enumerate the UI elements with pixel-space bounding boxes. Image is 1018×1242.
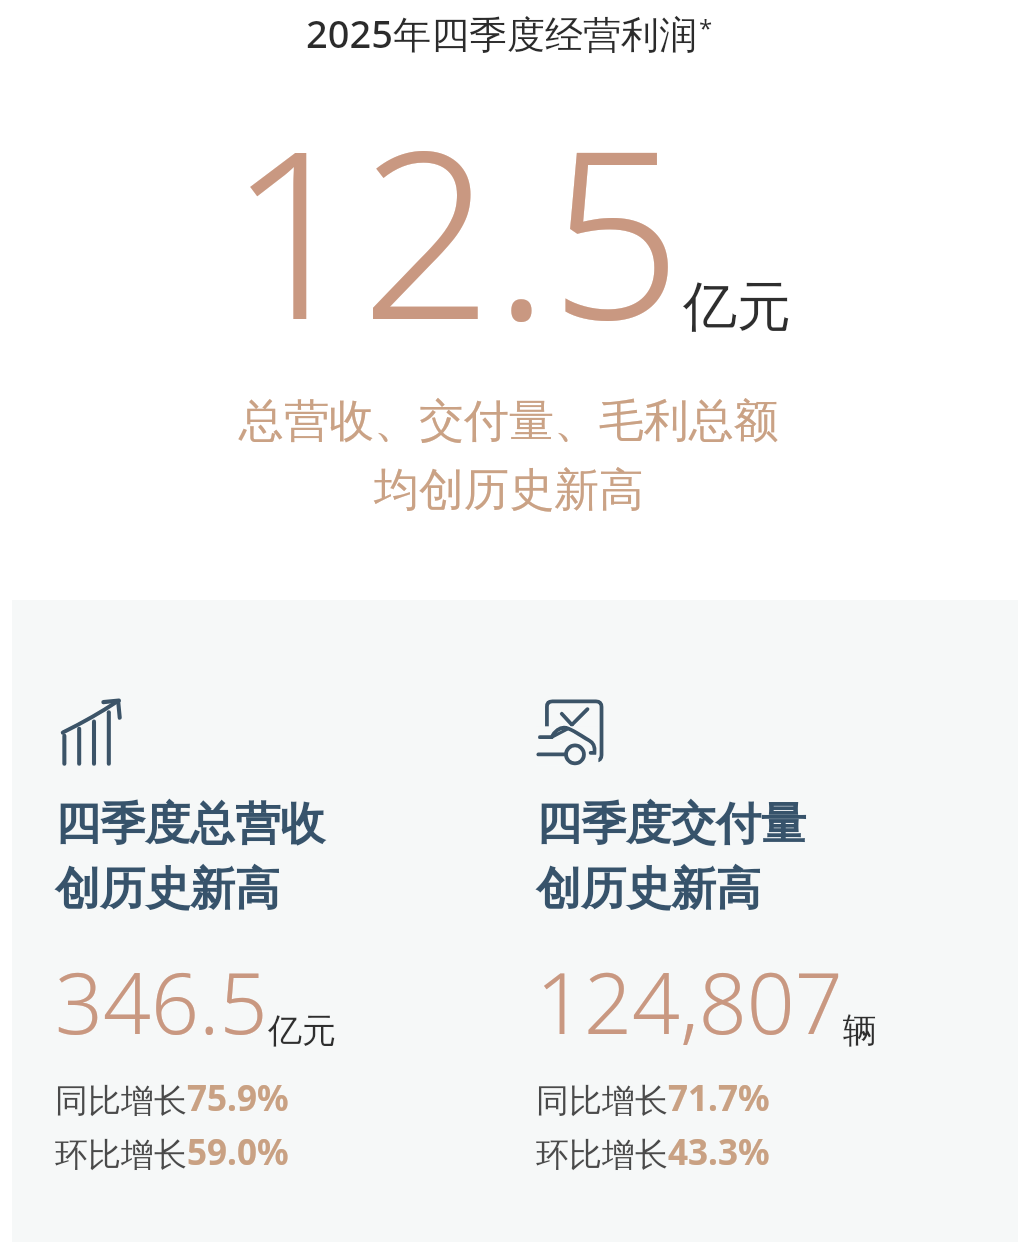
staticText: 12.5 <box>228 71 683 387</box>
staticText: 均创历史新高 <box>374 462 644 519</box>
staticText: 59.0% <box>187 1128 289 1176</box>
button[interactable]: Revenue growth chart <box>55 600 536 1176</box>
staticText: 创历史新高 <box>55 861 280 918</box>
staticText: 环比增长 <box>55 1134 187 1176</box>
staticText: 2025年四季度经营利润 <box>306 7 697 59</box>
staticText: 同比增长 <box>55 1080 187 1122</box>
staticText: 75.9% <box>187 1074 289 1122</box>
staticText: 71.7% <box>668 1074 770 1122</box>
staticText: 四季度交付量 <box>536 796 806 853</box>
staticText: 创历史新高 <box>536 861 761 918</box>
staticText: 43.3% <box>668 1128 770 1176</box>
staticText: 总营收、交付量、毛利总额 <box>239 393 779 450</box>
staticText: 亿元 <box>683 273 791 341</box>
staticText: 124,807 <box>536 944 843 1058</box>
other: Vehicle deliveries <box>536 692 614 770</box>
other: Revenue growth chart <box>55 692 133 770</box>
staticText: 辆 <box>843 1009 877 1052</box>
button[interactable]: Vehicle deliveries <box>536 600 1018 1176</box>
staticText: 同比增长 <box>536 1080 668 1122</box>
staticText: * <box>699 11 713 44</box>
staticText: 四季度总营收 <box>55 796 325 853</box>
staticText: 346.5 <box>55 944 268 1058</box>
staticText: 亿元 <box>268 1009 336 1052</box>
staticText: 环比增长 <box>536 1134 668 1176</box>
